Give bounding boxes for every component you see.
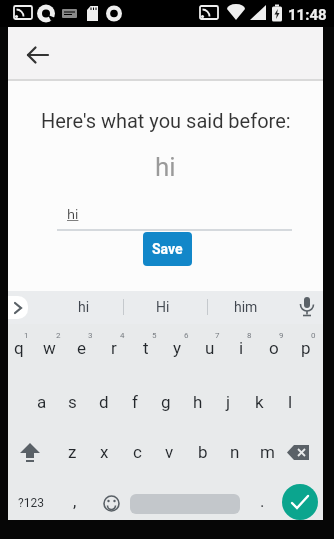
button[interactable]: u [194, 326, 225, 370]
button[interactable]: g [150, 380, 181, 424]
staticText: 4 [120, 331, 125, 340]
staticText: hi [67, 205, 79, 223]
button[interactable]: t [130, 326, 161, 370]
button[interactable] [12, 434, 48, 470]
button[interactable]: j [213, 380, 244, 424]
staticText: 11:48 [288, 6, 327, 24]
button[interactable]: a [26, 380, 57, 424]
staticText: k [255, 392, 264, 412]
button[interactable]: f [119, 380, 150, 424]
staticText: 2 [56, 331, 61, 340]
button[interactable]: l [275, 380, 306, 424]
button[interactable]: k [244, 380, 275, 424]
button[interactable]: z [57, 430, 88, 474]
staticText: 1 [24, 331, 29, 340]
staticText: , [73, 491, 77, 511]
button[interactable]: Hi [128, 291, 198, 323]
staticText: u [205, 338, 215, 358]
staticText: 5 [152, 331, 157, 340]
staticText: e [77, 338, 87, 358]
button[interactable] [130, 494, 240, 514]
staticText: i [239, 338, 244, 358]
staticText: o [269, 338, 279, 358]
staticText: z [68, 442, 77, 462]
staticText: m [260, 442, 275, 462]
button[interactable]: Save [143, 232, 192, 266]
button[interactable]: i [226, 326, 257, 370]
staticText: 6 [184, 331, 189, 340]
staticText: h [193, 392, 203, 412]
button[interactable] [98, 489, 125, 517]
button[interactable]: . [250, 485, 274, 517]
staticText: hi [78, 299, 90, 315]
staticText: a [37, 392, 47, 412]
staticText: Here's what you said before: [41, 109, 291, 132]
staticText: v [165, 442, 174, 462]
button[interactable]: v [154, 430, 185, 474]
staticText: hi [155, 152, 176, 182]
staticText: . [260, 491, 265, 511]
button[interactable]: h [182, 380, 213, 424]
staticText: y [173, 338, 182, 358]
button[interactable]: d [88, 380, 119, 424]
staticText: n [230, 442, 240, 462]
button[interactable]: b [187, 430, 218, 474]
button[interactable] [294, 293, 320, 321]
button[interactable]: y [162, 326, 193, 370]
staticText: d [99, 392, 109, 412]
staticText: Hi [156, 299, 170, 315]
staticText: q [14, 338, 24, 358]
staticText: g [161, 392, 171, 412]
staticText: 0 [311, 331, 316, 340]
staticText: Save [152, 241, 183, 257]
staticText: c [133, 442, 142, 462]
staticText: t [143, 338, 149, 358]
button[interactable]: r [98, 326, 129, 370]
button[interactable] [280, 434, 316, 470]
button[interactable]: c [122, 430, 153, 474]
staticText: 9 [279, 331, 284, 340]
button[interactable]: q [3, 326, 34, 370]
button[interactable]: w [34, 326, 65, 370]
button[interactable]: hi [49, 291, 119, 323]
staticText: r [111, 338, 117, 358]
staticText: 7 [215, 331, 220, 340]
button[interactable]: x [89, 430, 120, 474]
button[interactable]: m [252, 430, 283, 474]
staticText: him [234, 299, 258, 315]
button[interactable]: s [57, 380, 88, 424]
staticText: ?123 [18, 496, 44, 510]
button[interactable]: n [219, 430, 250, 474]
staticText: p [301, 338, 311, 358]
button[interactable] [8, 296, 28, 319]
button[interactable]: , [63, 485, 87, 517]
button[interactable] [282, 484, 318, 520]
staticText: s [68, 392, 77, 412]
staticText: l [288, 392, 293, 412]
button[interactable]: ?123 [9, 485, 53, 521]
staticText: j [226, 392, 231, 412]
staticText: b [198, 442, 208, 462]
staticText: 3 [88, 331, 93, 340]
button[interactable]: him [211, 291, 281, 323]
button[interactable]: e [66, 326, 97, 370]
staticText: w [43, 338, 56, 358]
button[interactable]: p [290, 326, 321, 370]
button[interactable]: o [258, 326, 289, 370]
button[interactable] [22, 39, 54, 71]
staticText: x [100, 442, 109, 462]
staticText: f [132, 392, 138, 412]
staticText: 8 [247, 331, 252, 340]
